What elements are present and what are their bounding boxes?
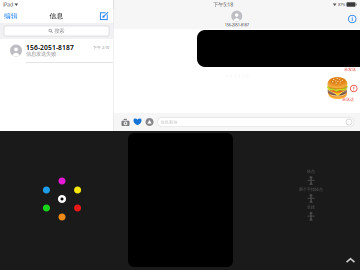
staticText: 156-2051-8187 bbox=[26, 43, 74, 52]
staticText: 编辑 bbox=[4, 12, 18, 20]
button[interactable]: Digital Touch bbox=[131, 115, 143, 129]
staticText: iPad bbox=[3, 1, 13, 8]
staticText: 长按 bbox=[307, 205, 315, 210]
staticText: 信息/彩信 bbox=[160, 119, 177, 125]
button[interactable]: 156-2051-8187 bbox=[0, 39, 113, 62]
staticText: 未发送 bbox=[344, 67, 356, 72]
staticText: 信息发送失败 bbox=[26, 51, 56, 57]
button[interactable]: Expand bbox=[341, 251, 360, 270]
button[interactable]: New message bbox=[96, 9, 113, 23]
staticText: 下午5:18 bbox=[213, 1, 233, 8]
staticText: 下午 2:10 bbox=[93, 45, 109, 50]
staticText: 🍔 bbox=[324, 77, 349, 100]
staticText: 搜索 bbox=[54, 28, 64, 34]
staticText: 156-2051-8187 bbox=[225, 22, 249, 27]
staticText: 87% bbox=[338, 2, 345, 7]
button[interactable]: Color picker bbox=[34, 171, 90, 227]
staticText: 两个手指轻点 bbox=[299, 187, 323, 192]
button[interactable]: App Store bbox=[143, 115, 155, 129]
staticText: 未送达 bbox=[342, 97, 354, 102]
button[interactable]: 搜索 bbox=[0, 23, 113, 39]
button[interactable]: 信息/彩信 bbox=[155, 117, 354, 127]
button[interactable]: Camera bbox=[119, 115, 131, 129]
staticText: 信息 bbox=[49, 12, 63, 20]
button[interactable]: 编辑 bbox=[0, 9, 22, 23]
staticText: 轻点 bbox=[307, 169, 315, 174]
button[interactable]: Details bbox=[344, 9, 360, 29]
